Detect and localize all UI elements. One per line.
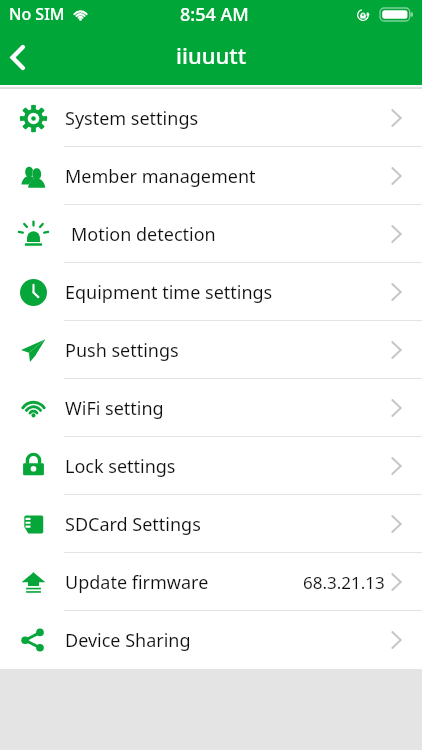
- button[interactable]: SDCard Settings: [0, 495, 422, 553]
- button[interactable]: Member management: [0, 147, 422, 205]
- staticText: 8:54 AM: [180, 2, 249, 27]
- button[interactable]: Push settings: [0, 321, 422, 379]
- button[interactable]: Lock settings: [0, 437, 422, 495]
- staticText: Lock settings: [65, 454, 390, 479]
- staticText: No SIM: [9, 3, 65, 25]
- staticText: Motion detection: [71, 222, 390, 247]
- staticText: Update firmware: [65, 570, 302, 595]
- staticText: Device Sharing: [65, 628, 390, 653]
- button[interactable]: System settings: [0, 89, 422, 147]
- button[interactable]: Equipment time settings: [0, 263, 422, 321]
- staticText: System settings: [65, 106, 390, 131]
- button[interactable]: Update firmware: [0, 553, 422, 611]
- button[interactable]: Back: [0, 29, 35, 86]
- button[interactable]: WiFi setting: [0, 379, 422, 437]
- staticText: WiFi setting: [65, 396, 390, 421]
- staticText: Push settings: [65, 338, 390, 363]
- button[interactable]: Motion detection: [0, 205, 422, 263]
- staticText: Equipment time settings: [65, 280, 390, 305]
- button[interactable]: Device Sharing: [0, 611, 422, 669]
- staticText: iiuuutt: [176, 40, 247, 70]
- staticText: SDCard Settings: [65, 512, 390, 537]
- staticText: 68.3.21.13: [303, 571, 385, 594]
- staticText: Member management: [65, 164, 390, 189]
